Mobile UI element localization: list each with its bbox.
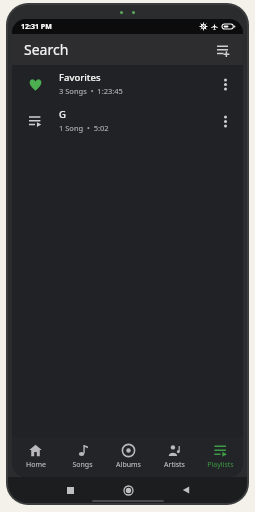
button[interactable]: Artists bbox=[151, 440, 197, 474]
staticText: Albums bbox=[116, 460, 141, 470]
button[interactable]: Home bbox=[113, 477, 143, 503]
staticText: 12:31 PM bbox=[21, 22, 52, 32]
staticText: Search bbox=[24, 40, 69, 59]
staticText: Songs bbox=[72, 460, 93, 470]
staticText: 3 Songs • 1:23:45 bbox=[59, 86, 123, 96]
button[interactable]: Recents bbox=[55, 477, 85, 503]
button[interactable]: Home bbox=[12, 440, 59, 474]
button[interactable]: Favorites bbox=[12, 65, 243, 102]
button[interactable]: Songs bbox=[59, 440, 105, 474]
button[interactable]: Albums bbox=[105, 440, 151, 474]
staticText: Artists bbox=[164, 460, 185, 470]
button[interactable]: Add playlist bbox=[211, 38, 235, 62]
staticText: Favorites bbox=[59, 71, 101, 84]
staticText: G bbox=[59, 108, 66, 121]
staticText: Home bbox=[26, 460, 46, 470]
staticText: Playlists bbox=[207, 460, 234, 470]
button[interactable]: G bbox=[12, 102, 243, 139]
button[interactable]: Playlists bbox=[197, 440, 243, 474]
button[interactable]: Back bbox=[171, 477, 201, 503]
button[interactable]: More options bbox=[213, 72, 237, 96]
button[interactable]: More options bbox=[213, 109, 237, 133]
staticText: 1 Song • 5:02 bbox=[59, 123, 109, 133]
